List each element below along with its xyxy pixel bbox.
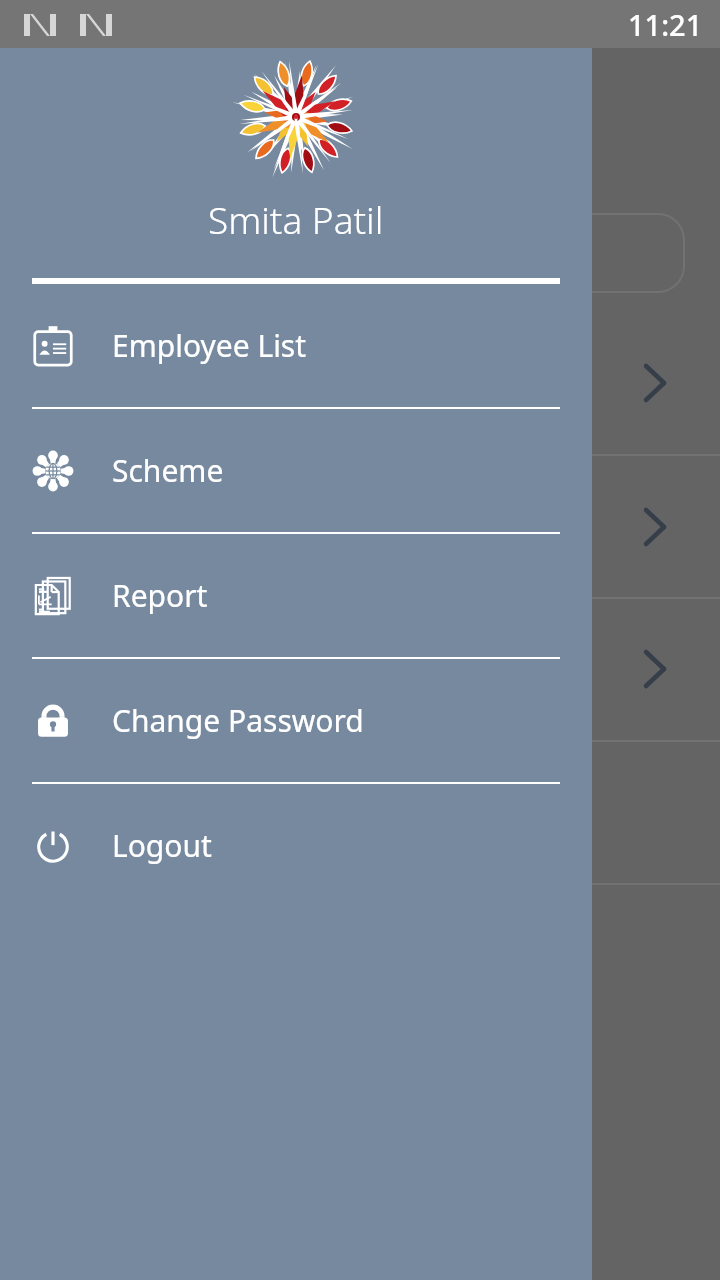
staticText: Logout	[112, 825, 212, 866]
staticText: Scheme	[112, 450, 224, 491]
staticText: 11:21	[628, 5, 703, 44]
button[interactable]: Report	[0, 534, 592, 657]
button[interactable]: Scheme	[0, 409, 592, 532]
staticText: Employee List	[112, 325, 307, 366]
staticText: Change Password	[112, 700, 364, 741]
staticText: Report	[112, 575, 208, 616]
button[interactable]: Logout	[0, 784, 592, 907]
button[interactable]: Change Password	[0, 659, 592, 782]
staticText: Smita Patil	[208, 194, 384, 244]
other: App logo	[231, 52, 361, 182]
button[interactable]: Employee List	[0, 284, 592, 407]
